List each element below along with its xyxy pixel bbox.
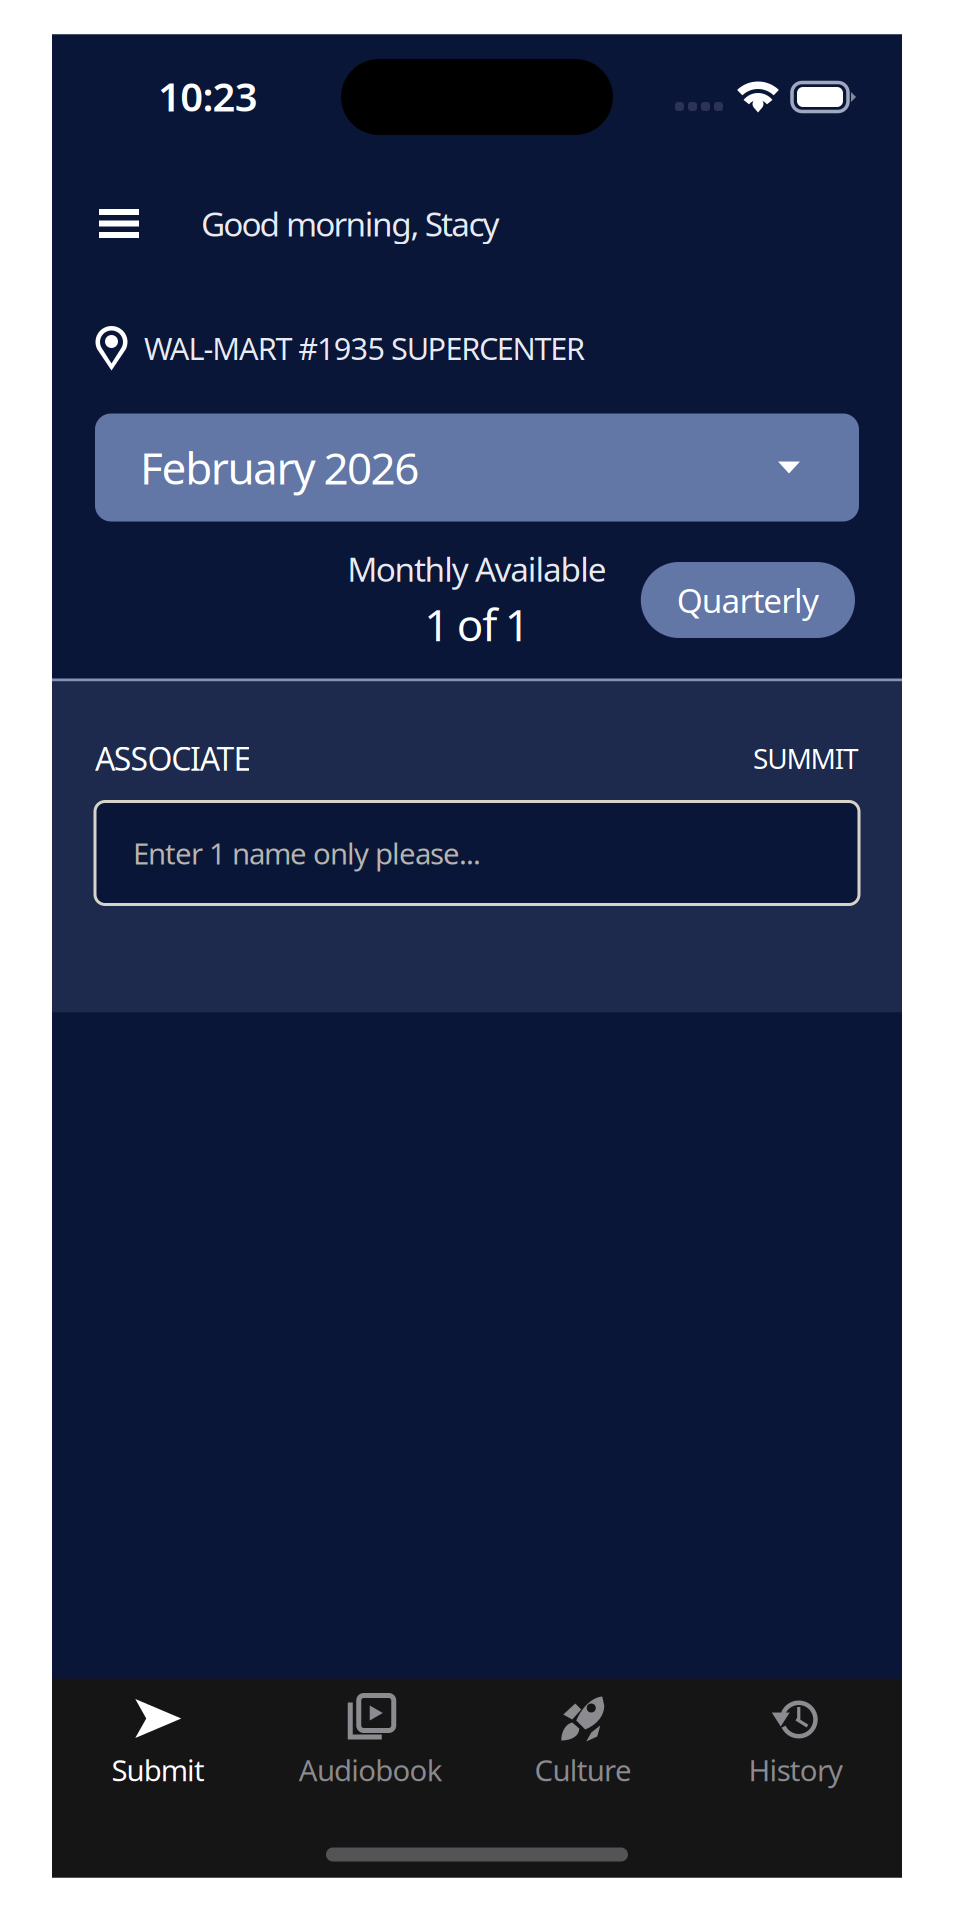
button[interactable]: Submit: [52, 1678, 264, 1789]
staticText: 1 of 1: [424, 595, 530, 653]
staticText: Monthly Available: [347, 547, 607, 591]
staticText: February 2026: [140, 438, 419, 497]
staticText: Good morning, Stacy: [201, 201, 500, 246]
staticText: Enter 1 name only please...: [133, 833, 481, 872]
staticText: Submit: [111, 1750, 205, 1789]
staticText: Audiobook: [299, 1750, 443, 1789]
button[interactable]: February 2026: [95, 413, 859, 521]
staticText: SUMMIT: [753, 740, 859, 777]
button[interactable]: Menu: [79, 185, 159, 261]
staticText: WAL-MART #1935 SUPERCENTER: [144, 328, 585, 368]
button[interactable]: Quarterly: [641, 562, 855, 638]
staticText: 10:23: [158, 69, 258, 122]
staticText: History: [748, 1750, 843, 1789]
staticText: ASSOCIATE: [95, 737, 251, 779]
staticText: Quarterly: [677, 578, 819, 622]
button[interactable]: Audiobook: [264, 1678, 477, 1789]
staticText: Culture: [534, 1750, 632, 1789]
button[interactable]: Culture: [477, 1678, 689, 1789]
button[interactable]: History: [689, 1678, 902, 1789]
button[interactable]: Enter 1 name only please...: [95, 801, 859, 904]
